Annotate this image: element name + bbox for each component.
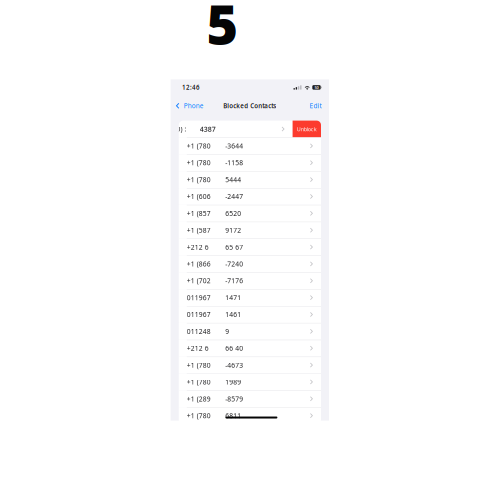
staticText: 0) :	[176, 125, 186, 133]
button[interactable]: 011248	[179, 323, 321, 340]
staticText: 5444	[225, 175, 241, 184]
button[interactable]: +1 (780	[179, 407, 321, 424]
button[interactable]: +1 (289	[179, 390, 321, 407]
staticText: 4387	[200, 124, 216, 134]
button[interactable]: 011967	[179, 306, 321, 323]
staticText: +1 (780	[187, 158, 211, 167]
staticText: 9172	[225, 226, 241, 235]
staticText: +1 (702	[187, 276, 211, 285]
button[interactable]: +1 (780	[179, 154, 321, 171]
staticText: 5	[206, 0, 238, 59]
button[interactable]: 011967	[179, 289, 321, 306]
staticText: -3644	[225, 141, 243, 150]
staticText: Phone	[184, 102, 204, 110]
staticText: +1 (606	[187, 192, 211, 201]
staticText: +1 (866	[187, 259, 211, 268]
staticText: +1 (780	[187, 141, 211, 150]
button[interactable]: 0) :	[179, 121, 293, 137]
staticText: 011967	[187, 293, 211, 302]
staticText: -2447	[225, 192, 243, 201]
button[interactable]: +212 6	[179, 239, 321, 255]
staticText: +212 6	[187, 243, 209, 251]
staticText: -7240	[225, 259, 243, 268]
staticText: 1461	[225, 310, 241, 319]
staticText: Blocked Contacts	[223, 102, 276, 110]
staticText: +1 (857	[187, 209, 211, 218]
staticText: +1 (780	[187, 361, 211, 369]
button[interactable]: +1 (866	[179, 255, 321, 272]
staticText: +212 6	[187, 344, 209, 353]
button[interactable]: Unblock	[293, 121, 321, 137]
staticText: +1 (289	[187, 394, 211, 403]
button[interactable]: Edit	[309, 101, 321, 115]
staticText: +1 (780	[187, 411, 211, 420]
button[interactable]: +1 (702	[179, 272, 321, 289]
button[interactable]: Phone	[176, 101, 204, 115]
staticText: +1 (780	[187, 377, 211, 386]
staticText: 1471	[225, 293, 241, 302]
button[interactable]: +1 (587	[179, 222, 321, 239]
staticText: Edit	[309, 102, 321, 110]
button[interactable]: +1 (857	[179, 205, 321, 222]
button[interactable]: +1 (780	[179, 357, 321, 373]
staticText: -1158	[225, 158, 243, 167]
staticText: 50	[314, 85, 318, 90]
staticText: +1 (587	[187, 226, 211, 235]
button[interactable]: +1 (780	[179, 137, 321, 154]
staticText: 66 40	[225, 344, 243, 353]
staticText: -8579	[225, 394, 243, 403]
staticText: 9	[225, 327, 229, 336]
staticText: 011248	[187, 327, 211, 336]
staticText: 12:46	[182, 83, 200, 91]
staticText: 65 67	[225, 243, 243, 251]
button[interactable]: +212 6	[179, 340, 321, 357]
staticText: -4673	[225, 361, 243, 369]
staticText: +1 (780	[187, 175, 211, 184]
button[interactable]: +1 (606	[179, 188, 321, 205]
staticText: -7176	[225, 276, 243, 285]
staticText: 1989	[225, 377, 241, 386]
staticText: 6811	[225, 411, 241, 420]
button[interactable]: +1 (780	[179, 171, 321, 188]
staticText: 011967	[187, 310, 211, 319]
staticText: Unblock	[297, 125, 317, 133]
staticText: 6520	[225, 209, 241, 218]
button[interactable]: +1 (780	[179, 373, 321, 390]
